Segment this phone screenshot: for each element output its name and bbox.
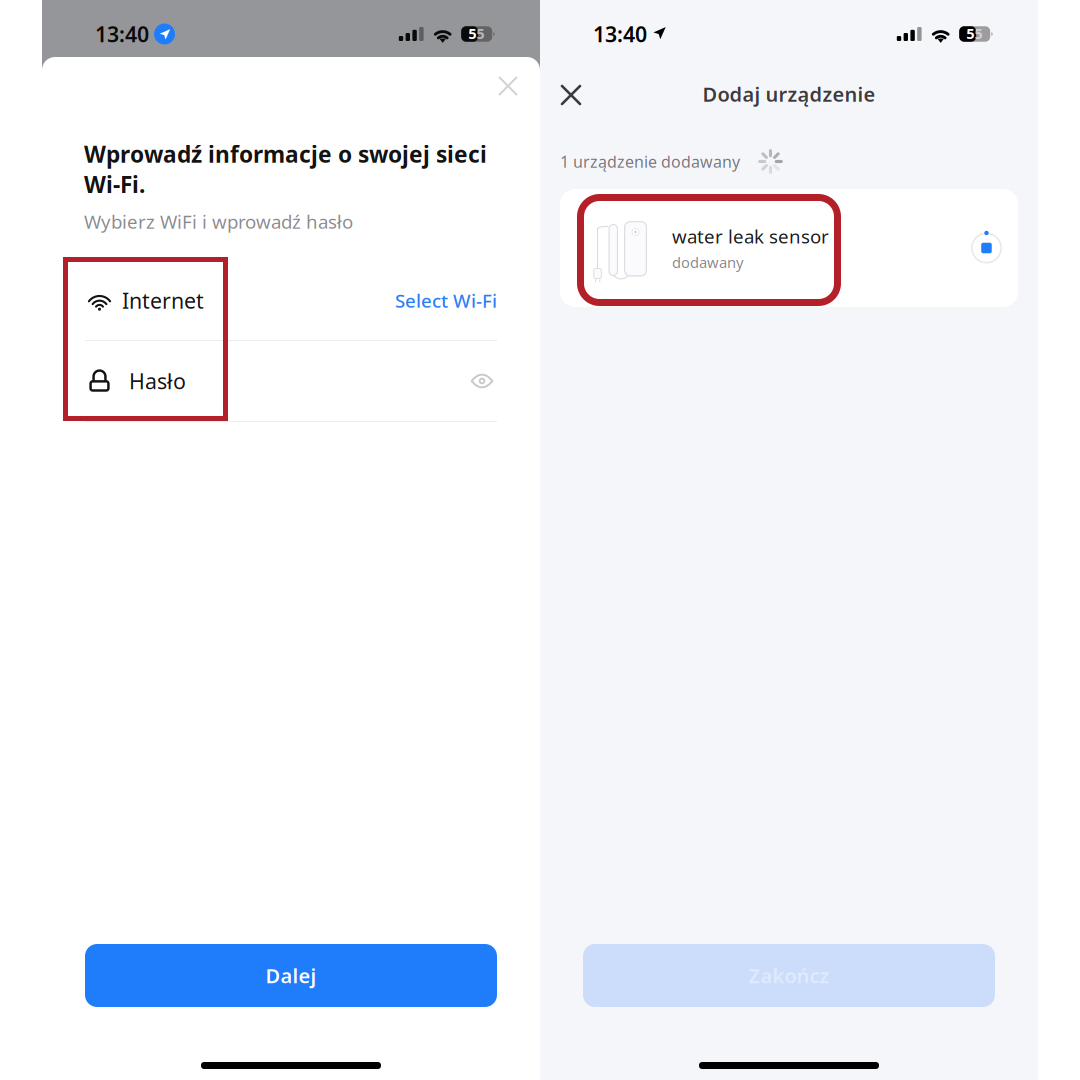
staticText: 5 bbox=[468, 24, 476, 43]
staticText: dodawany bbox=[672, 253, 743, 272]
staticText: 5 bbox=[966, 24, 974, 43]
button[interactable]: Internet bbox=[85, 261, 497, 340]
staticText: 1 urządzenie dodawany bbox=[560, 151, 740, 172]
staticText: 5 bbox=[476, 24, 484, 43]
staticText: 5 bbox=[974, 24, 982, 43]
button[interactable]: Close bbox=[549, 73, 593, 117]
staticText: Select Wi-Fi bbox=[395, 288, 497, 313]
staticText: water leak sensor bbox=[672, 224, 829, 249]
staticText: Wybierz WiFi i wprowadź hasło bbox=[84, 209, 353, 234]
staticText: Hasło bbox=[129, 367, 186, 395]
button[interactable]: Zakończ bbox=[583, 944, 995, 1007]
button[interactable]: Close bbox=[486, 64, 530, 108]
staticText: Dodaj urządzenie bbox=[702, 81, 875, 107]
staticText: 13:40 bbox=[593, 20, 647, 48]
staticText: 13:40 bbox=[95, 20, 149, 48]
staticText: Dalej bbox=[265, 962, 316, 989]
staticText: Wprowadź informacje o swojej sieci Wi-Fi… bbox=[84, 139, 487, 199]
staticText: Internet bbox=[122, 286, 204, 315]
staticText: Zakończ bbox=[748, 962, 829, 989]
button[interactable]: Dalej bbox=[85, 944, 497, 1007]
button[interactable]: Hasło bbox=[85, 341, 497, 421]
